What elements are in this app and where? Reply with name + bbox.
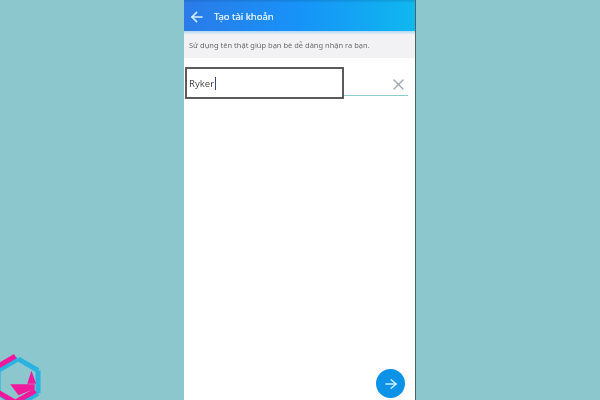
button[interactable]: Back <box>187 6 206 25</box>
staticText: Sử dụng tên thật giúp bạn bè dễ dàng nhậ… <box>189 40 370 50</box>
button[interactable]: Clear <box>388 74 408 94</box>
staticText: Ryker <box>189 77 215 90</box>
button[interactable]: Ryker <box>186 68 343 98</box>
staticText: Tạo tài khoản <box>214 10 274 23</box>
button[interactable]: Next <box>376 369 405 398</box>
